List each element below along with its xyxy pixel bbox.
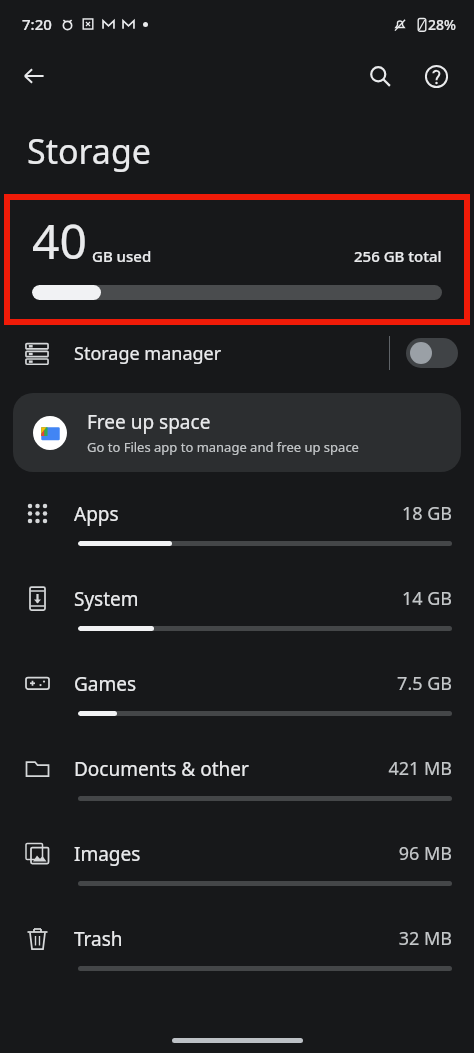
staticText: 421 MB: [388, 756, 452, 781]
staticText: Documents & other: [74, 756, 249, 782]
button[interactable]: Documents & other: [0, 741, 474, 826]
button[interactable]: Apps: [0, 486, 474, 571]
staticText: Images: [74, 841, 141, 867]
button[interactable]: Trash: [0, 911, 474, 996]
button[interactable]: 40: [10, 200, 464, 319]
button[interactable]: Help: [412, 52, 460, 100]
staticText: System: [74, 586, 139, 612]
staticText: Apps: [74, 501, 119, 527]
button[interactable]: System: [0, 571, 474, 656]
staticText: GB used: [92, 246, 152, 266]
staticText: Storage manager: [74, 341, 222, 366]
button[interactable]: Search: [356, 52, 404, 100]
staticText: 7:20: [22, 14, 52, 34]
button[interactable]: Games: [0, 656, 474, 741]
staticText: 7.5 GB: [397, 671, 452, 696]
staticText: Free up space: [87, 409, 211, 435]
staticText: 28%: [428, 15, 456, 34]
staticText: Storage: [27, 128, 152, 174]
staticText: Games: [74, 671, 137, 697]
button[interactable]: Storage manager toggle: [406, 338, 458, 368]
staticText: 96 MB: [398, 841, 452, 866]
button[interactable]: Images: [0, 826, 474, 911]
staticText: 14 GB: [401, 586, 452, 611]
staticText: Trash: [74, 926, 123, 952]
staticText: Go to Files app to manage and free up sp…: [87, 438, 359, 456]
button[interactable]: Storage manager: [0, 325, 474, 381]
staticText: 256 GB total: [354, 246, 442, 266]
button[interactable]: Back: [10, 52, 58, 100]
staticText: 32 MB: [398, 926, 452, 951]
button[interactable]: Free up space: [13, 393, 461, 472]
staticText: 40: [32, 208, 87, 273]
staticText: 18 GB: [401, 501, 452, 526]
